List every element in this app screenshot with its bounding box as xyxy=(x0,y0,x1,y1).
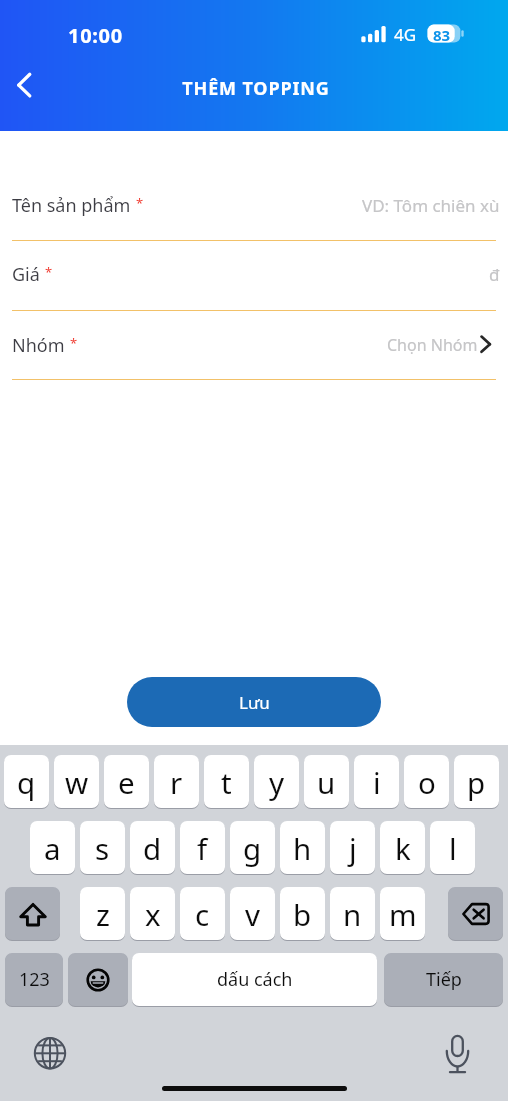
staticText: Chọn Nhóm xyxy=(387,334,478,356)
staticText: w xyxy=(65,762,89,802)
staticText: * xyxy=(45,263,53,281)
button[interactable]: t xyxy=(204,755,249,808)
staticText: m xyxy=(389,894,417,934)
staticText: * xyxy=(136,194,144,212)
button[interactable]: n xyxy=(330,887,375,940)
button[interactable]: q xyxy=(4,755,49,808)
button[interactable]: Back xyxy=(0,62,45,107)
staticText: l xyxy=(449,828,457,868)
button[interactable]: Nhóm xyxy=(0,333,508,388)
button[interactable]: Lưu xyxy=(127,677,381,727)
staticText: Lưu xyxy=(239,691,270,714)
staticText: r xyxy=(170,762,183,802)
button[interactable]: Change keyboard language xyxy=(28,1031,72,1075)
staticText: VD: Tôm chiên xù xyxy=(362,194,500,217)
button[interactable]: v xyxy=(230,887,275,940)
staticText: Giá xyxy=(12,262,40,287)
staticText: a xyxy=(44,828,61,868)
staticText: v xyxy=(245,894,260,934)
button[interactable]: Backspace xyxy=(448,887,503,940)
button[interactable]: g xyxy=(230,821,275,874)
staticText: y xyxy=(269,762,285,802)
button[interactable]: b xyxy=(280,887,325,940)
staticText: 83 xyxy=(433,25,451,45)
staticText: s xyxy=(95,828,110,868)
staticText: b xyxy=(293,894,312,934)
staticText: k xyxy=(395,828,411,868)
button[interactable]: i xyxy=(354,755,399,808)
staticText: j xyxy=(349,828,357,868)
button[interactable]: 123 xyxy=(5,953,63,1006)
button[interactable]: dấu cách xyxy=(132,953,377,1006)
staticText: * xyxy=(70,334,78,352)
staticText: u xyxy=(317,762,336,802)
button[interactable]: w xyxy=(54,755,99,808)
button[interactable]: a xyxy=(30,821,75,874)
button[interactable]: y xyxy=(254,755,299,808)
staticText: dấu cách xyxy=(217,967,293,992)
button[interactable]: c xyxy=(180,887,225,940)
staticText: x xyxy=(145,894,161,934)
staticText: z xyxy=(96,894,110,934)
staticText: d xyxy=(143,828,162,868)
staticText: Tiếp xyxy=(426,967,462,992)
staticText: h xyxy=(293,828,312,868)
staticText: n xyxy=(343,894,362,934)
staticText: THÊM TOPPING xyxy=(2,76,508,101)
button[interactable]: j xyxy=(330,821,375,874)
button[interactable]: d xyxy=(130,821,175,874)
button[interactable]: Shift xyxy=(5,887,60,940)
staticText: g xyxy=(243,828,262,868)
staticText: 10:00 xyxy=(68,22,123,49)
staticText: q xyxy=(17,762,36,802)
staticText: t xyxy=(221,762,232,802)
button[interactable]: x xyxy=(130,887,175,940)
staticText: e xyxy=(118,762,135,802)
staticText: đ xyxy=(489,263,500,286)
button[interactable]: o xyxy=(404,755,449,808)
staticText: o xyxy=(418,762,436,802)
button[interactable]: h xyxy=(280,821,325,874)
staticText: 4G xyxy=(394,23,417,46)
button[interactable]: Voice input xyxy=(435,1030,480,1075)
button[interactable]: p xyxy=(454,755,499,808)
button[interactable]: u xyxy=(304,755,349,808)
button[interactable]: Giá xyxy=(0,262,508,319)
button[interactable]: Tên sản phẩm xyxy=(0,193,508,249)
button[interactable]: Tiếp xyxy=(384,953,503,1006)
staticText: f xyxy=(197,828,208,868)
button[interactable]: Emoji keyboard xyxy=(68,953,128,1006)
staticText: i xyxy=(373,762,381,802)
staticText: 123 xyxy=(19,967,50,992)
staticText: Nhóm xyxy=(12,333,65,358)
button[interactable]: e xyxy=(104,755,149,808)
button[interactable]: f xyxy=(180,821,225,874)
staticText: c xyxy=(195,894,210,934)
button[interactable]: l xyxy=(430,821,475,874)
button[interactable]: k xyxy=(380,821,425,874)
staticText: Tên sản phẩm xyxy=(12,193,131,218)
button[interactable]: z xyxy=(80,887,125,940)
button[interactable]: s xyxy=(80,821,125,874)
button[interactable]: m xyxy=(380,887,425,940)
button[interactable]: r xyxy=(154,755,199,808)
staticText: p xyxy=(467,762,486,802)
